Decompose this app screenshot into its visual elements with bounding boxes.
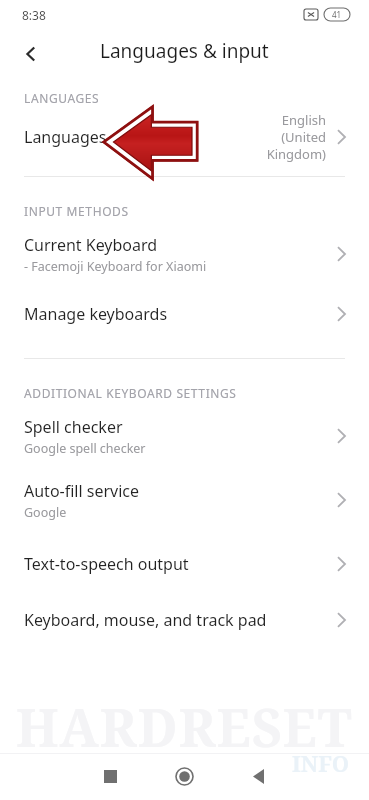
staticText: Keyboard, mouse, and track pad (24, 609, 267, 631)
button[interactable]: Manage keyboards (0, 291, 369, 337)
staticText: 41 (332, 9, 342, 20)
staticText: Text-to-speech output (24, 553, 189, 575)
button[interactable]: Current Keyboard (0, 227, 369, 281)
button[interactable]: Back (14, 37, 48, 71)
button[interactable]: Keyboard, mouse, and track pad (0, 597, 369, 643)
button[interactable]: Auto-fill service (0, 473, 369, 527)
staticText: English (United Kingdom) (236, 111, 326, 163)
staticText: Spell checker (24, 416, 123, 438)
staticText: Auto-fill service (24, 480, 140, 502)
staticText: Current Keyboard (24, 234, 158, 256)
button[interactable]: Spell checker (0, 409, 369, 463)
button[interactable]: Home (158, 753, 210, 800)
button[interactable]: Recent apps (84, 753, 136, 800)
staticText: Google spell checker (24, 440, 146, 457)
staticText: 8:38 (22, 7, 46, 23)
staticText: HARDRESET (16, 691, 353, 753)
staticText: LANGUAGES (24, 90, 100, 106)
staticText: Languages & input (100, 38, 269, 64)
staticText: INFO (292, 748, 350, 778)
staticText: ADDITIONAL KEYBOARD SETTINGS (24, 385, 237, 401)
staticText: - Facemoji Keyboard for Xiaomi (24, 258, 207, 275)
staticText: INPUT METHODS (24, 203, 129, 219)
staticText: Languages (24, 126, 107, 148)
staticText: Manage keyboards (24, 303, 168, 325)
button[interactable]: Back (232, 753, 284, 800)
button[interactable]: Languages (0, 106, 369, 168)
button[interactable]: Text-to-speech output (0, 541, 369, 587)
staticText: Google (24, 504, 67, 521)
